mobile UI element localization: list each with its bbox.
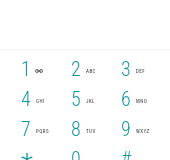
staticText: # [121,147,132,160]
staticText: ABC [86,68,96,74]
staticText: 8 [71,117,81,140]
button[interactable]: * [0,143,50,160]
staticText: PQRS [36,128,49,134]
staticText: 6 [121,87,131,110]
button[interactable]: 9 [100,113,150,143]
button[interactable]: 7 [0,113,50,143]
button[interactable]: 1 [0,53,50,83]
staticText: TUV [86,128,96,134]
staticText: 4 [21,87,31,110]
staticText: 9 [121,117,131,140]
button[interactable]: # [100,143,150,160]
staticText: 3 [121,57,131,80]
staticText: DEF [136,68,146,74]
button[interactable]: 5 [50,83,100,113]
staticText: 1 [21,57,31,80]
button[interactable]: 8 [50,113,100,143]
button[interactable]: 6 [100,83,150,113]
staticText: 7 [21,117,31,140]
staticText: GHI [36,98,45,104]
staticText: MNO [136,98,148,104]
staticText: 5 [71,87,81,110]
button[interactable]: 0 [50,143,100,160]
staticText: 2 [71,57,81,80]
staticText: JKL [86,98,95,104]
button[interactable]: 4 [0,83,50,113]
staticText: WXYZ [136,128,150,134]
button[interactable]: 3 [100,53,150,83]
button[interactable]: 2 [50,53,100,83]
staticText: * [21,147,33,160]
staticText: 0 [71,147,81,160]
